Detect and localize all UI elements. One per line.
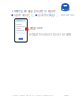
staticText: Creating an app project in Xcode (12, 10, 55, 13)
button[interactable]: Continue (18, 38, 23, 40)
button[interactable]: Developer docs (60, 3, 74, 16)
staticText: page 1 (64, 94, 70, 97)
staticText: developer docs (60, 13, 74, 16)
staticText: pick the App template (38, 13, 58, 17)
staticText: lorem ipsum dolor sit amet consectetur (12, 94, 53, 97)
staticText: Integer tincidunt dolor sit amet (29, 33, 71, 36)
staticText: Step one (30, 26, 43, 30)
staticText: Open Xcode, choose a new (14, 13, 34, 17)
